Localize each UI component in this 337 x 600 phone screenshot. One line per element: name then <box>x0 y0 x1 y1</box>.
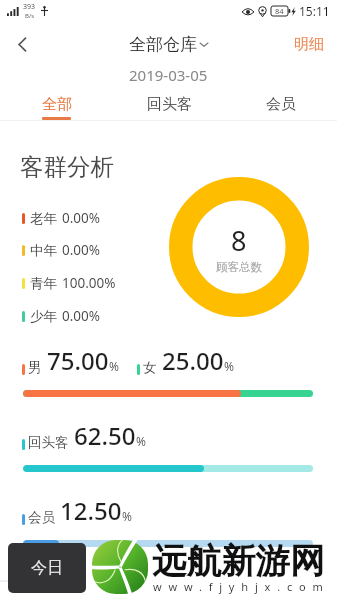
staticText: 全部仓库 <box>129 34 197 55</box>
staticText: 84 <box>275 6 284 16</box>
staticText: 25.00 <box>162 344 224 377</box>
button[interactable]: Back <box>0 22 44 66</box>
staticText: 中年 <box>30 242 57 259</box>
button[interactable]: 全部仓库 <box>129 34 208 55</box>
staticText: % <box>109 358 119 374</box>
button[interactable]: 明细 <box>294 35 324 54</box>
button[interactable]: 今日 <box>8 543 86 593</box>
staticText: 少年 <box>30 308 57 325</box>
staticText: 今日 <box>31 558 63 578</box>
staticText: 远航新游网 <box>152 540 325 583</box>
staticText: 客群分析 <box>20 152 114 182</box>
button[interactable]: 会员 <box>225 90 337 121</box>
staticText: 2019-03-05 <box>129 65 208 85</box>
staticText: 15:11 <box>299 3 330 19</box>
staticText: 女 <box>143 359 157 376</box>
staticText: 8 <box>231 222 247 259</box>
staticText: % <box>224 358 234 374</box>
staticText: 明细 <box>294 35 324 54</box>
staticText: 75.00 <box>47 344 109 377</box>
staticText: 顾客总数 <box>216 260 262 274</box>
staticText: 男 <box>28 359 42 376</box>
staticText: 393 <box>23 2 36 12</box>
staticText: B/s <box>25 12 35 20</box>
staticText: 回头客 <box>28 434 69 451</box>
staticText: % <box>122 508 132 524</box>
staticText: 会员 <box>28 509 55 526</box>
staticText: 全部 <box>42 95 72 114</box>
staticText: 老年 <box>30 210 57 227</box>
staticText: 回头客 <box>147 95 192 114</box>
staticText: 0.00% <box>62 209 101 227</box>
button[interactable]: 回头客 <box>113 90 225 121</box>
staticText: 12.50 <box>60 494 122 527</box>
staticText: 100.00% <box>62 274 116 292</box>
staticText: 0.00% <box>62 241 101 259</box>
staticText: % <box>136 433 146 449</box>
staticText: 青年 <box>30 275 57 292</box>
staticText: www.fjyhjx.com <box>153 579 330 594</box>
staticText: 会员 <box>266 95 296 114</box>
staticText: 62.50 <box>74 419 136 452</box>
button[interactable]: 全部 <box>0 90 113 121</box>
staticText: 0.00% <box>62 307 101 325</box>
